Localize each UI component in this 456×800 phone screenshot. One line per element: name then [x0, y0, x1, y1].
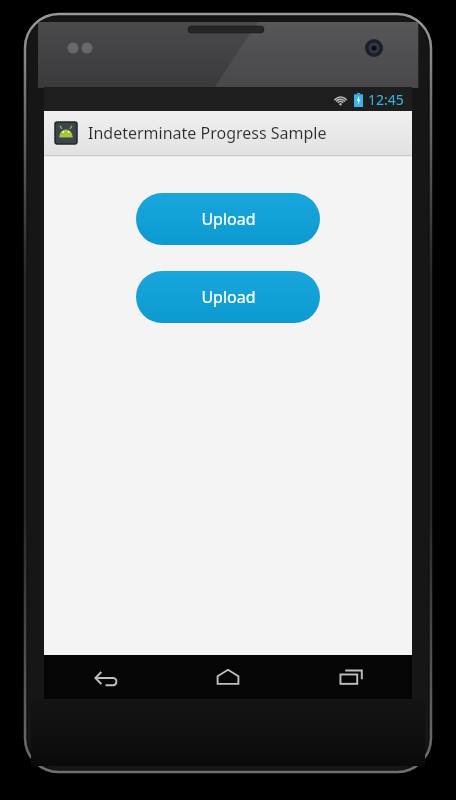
staticText: Upload: [201, 208, 256, 230]
staticText: Upload: [201, 286, 256, 308]
button[interactable]: Back: [44, 655, 166, 699]
button[interactable]: Home: [166, 655, 289, 699]
staticText: 12:45: [368, 90, 404, 109]
button[interactable]: Upload: [136, 193, 320, 245]
staticText: Indeterminate Progress Sample: [88, 122, 327, 144]
button[interactable]: Recent apps: [289, 655, 412, 699]
button[interactable]: Upload: [136, 271, 320, 323]
